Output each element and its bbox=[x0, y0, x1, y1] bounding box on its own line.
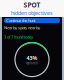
button[interactable]: Continue the hunt bbox=[4, 18, 60, 23]
staticText: Continue the hunt bbox=[6, 18, 35, 23]
staticText: SPOT bbox=[23, 0, 40, 9]
staticText: explored bbox=[26, 61, 38, 65]
staticText: 3 of 7 found today bbox=[4, 34, 33, 40]
staticText: hidden objectives bbox=[11, 9, 53, 16]
staticText: Nearby spots nearby bbox=[4, 25, 40, 30]
staticText: 43% bbox=[26, 54, 37, 61]
